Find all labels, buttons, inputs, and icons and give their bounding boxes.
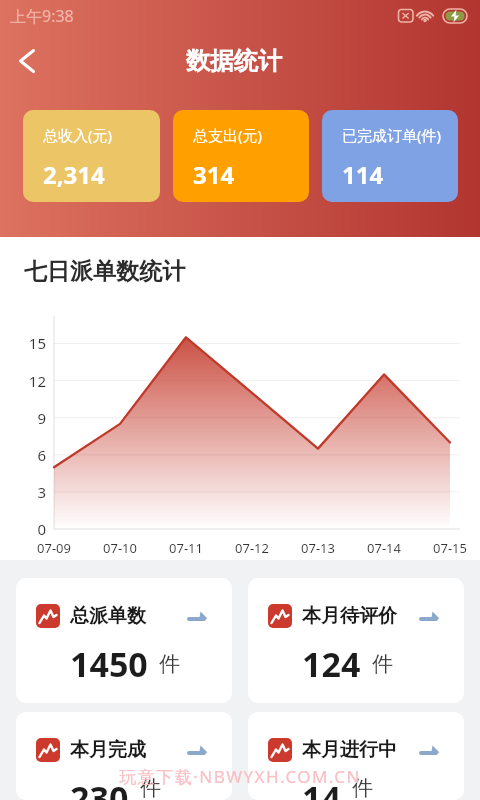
staticText: 件: [372, 651, 393, 677]
staticText: 314: [193, 158, 235, 191]
button[interactable]: 已完成订单(件): [322, 110, 458, 202]
staticText: 本月进行中: [302, 738, 397, 762]
staticText: 上午9:38: [10, 5, 74, 27]
staticText: 已完成订单(件): [342, 125, 442, 145]
staticText: 本月待评价: [302, 604, 397, 628]
staticText: 07-14: [354, 539, 414, 557]
staticText: 07-13: [288, 539, 348, 557]
staticText: 07-09: [24, 539, 84, 557]
staticText: 数据统计: [186, 46, 282, 76]
staticText: 件: [352, 775, 373, 800]
staticText: 12: [14, 371, 46, 391]
staticText: 0: [14, 519, 46, 539]
staticText: 14: [302, 775, 341, 800]
staticText: 1450: [70, 641, 148, 687]
staticText: 七日派单数统计: [24, 257, 185, 286]
staticText: 总派单数: [70, 604, 146, 628]
staticText: 07-10: [90, 539, 150, 557]
staticText: 本月完成: [70, 738, 146, 762]
button[interactable]: 总派单数: [16, 578, 232, 703]
staticText: 总收入(元): [43, 125, 113, 145]
button[interactable]: 总收入(元): [23, 110, 160, 202]
staticText: 07-15: [420, 539, 480, 557]
button[interactable]: 总支出(元): [173, 110, 309, 202]
staticText: 230: [70, 775, 129, 800]
button[interactable]: 本月进行中: [248, 712, 464, 800]
staticText: 件: [140, 775, 161, 800]
staticText: 15: [14, 333, 46, 353]
staticText: 9: [14, 408, 46, 428]
staticText: 玩意下载·NBWYXH.COM.CN: [0, 765, 480, 788]
staticText: 总支出(元): [193, 125, 263, 145]
button[interactable]: [6, 40, 48, 82]
staticText: 6: [14, 445, 46, 465]
button[interactable]: 本月待评价: [248, 578, 464, 703]
staticText: 3: [14, 482, 46, 502]
staticText: 114: [342, 158, 384, 191]
staticText: 07-12: [222, 539, 282, 557]
staticText: 07-11: [156, 539, 216, 557]
button[interactable]: 本月完成: [16, 712, 232, 800]
staticText: 124: [302, 641, 361, 687]
staticText: 2,314: [43, 158, 105, 191]
staticText: 件: [159, 651, 180, 677]
